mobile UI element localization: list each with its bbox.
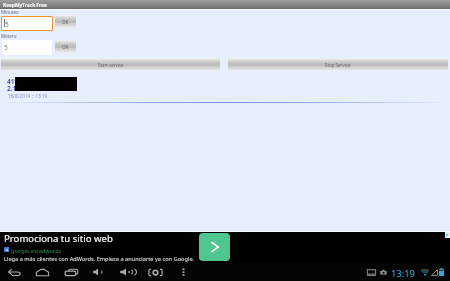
other: Ad choices xyxy=(445,232,450,238)
button[interactable]: Stop Service xyxy=(228,58,448,71)
button[interactable]: Volume up xyxy=(114,263,138,281)
button[interactable]: OK xyxy=(55,15,76,28)
button[interactable]: Home xyxy=(30,263,54,281)
button[interactable]: More options xyxy=(171,263,195,281)
button[interactable]: OK xyxy=(55,40,76,53)
staticText: Promociona tu sitio web xyxy=(4,232,113,245)
staticText: 13:19 xyxy=(391,267,415,280)
staticText: 5 xyxy=(4,43,8,52)
staticText: google.es/adwords xyxy=(11,247,62,255)
button[interactable]: 5 xyxy=(2,40,52,55)
button[interactable]: Recent apps xyxy=(59,263,83,281)
button[interactable]: Back xyxy=(2,263,26,281)
other: Screenshot taken xyxy=(380,269,387,276)
button[interactable]: 41 xyxy=(0,74,450,102)
button[interactable]: Promociona tu sitio web xyxy=(0,232,450,263)
staticText: 16/8/2014 :: 13:19 xyxy=(8,93,48,99)
staticText: Stop Service xyxy=(325,62,351,68)
staticText: Llega a más clientes con AdWords. Empiez… xyxy=(4,255,195,263)
button[interactable]: 5 xyxy=(2,17,52,30)
staticText: 5 xyxy=(5,20,9,29)
button[interactable]: Volume down xyxy=(86,263,110,281)
button[interactable]: Start service xyxy=(1,58,220,71)
staticText: Meters: xyxy=(1,33,18,39)
other: Notification xyxy=(367,269,376,276)
staticText: 2.1 xyxy=(7,84,17,93)
staticText: OK xyxy=(62,19,69,25)
staticText: 41 xyxy=(7,77,15,86)
staticText: Minutes: xyxy=(1,9,20,15)
staticText: s xyxy=(6,247,8,252)
staticText: Start service xyxy=(98,62,124,68)
staticText: OK xyxy=(62,44,69,50)
button[interactable]: Open advertisement xyxy=(199,233,230,261)
staticText: KeepMyTrack Free xyxy=(3,2,47,9)
button[interactable]: Screenshot xyxy=(143,263,167,281)
